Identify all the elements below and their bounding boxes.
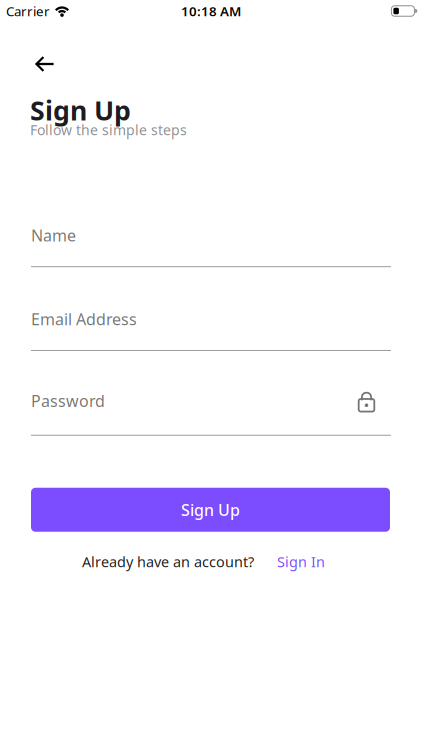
button[interactable] bbox=[0, 22, 55, 72]
staticText: Sign Up bbox=[181, 499, 240, 521]
staticText: Email Address bbox=[31, 308, 137, 330]
staticText: Follow the simple steps bbox=[30, 120, 187, 139]
button[interactable]: Sign In bbox=[277, 552, 325, 571]
staticText: Name bbox=[31, 224, 76, 246]
staticText: 10:18 AM bbox=[181, 2, 241, 20]
staticText: Sign In bbox=[277, 552, 325, 571]
button[interactable]: Sign Up bbox=[31, 488, 390, 532]
staticText: Carrier bbox=[6, 2, 50, 20]
staticText: Already have an account? bbox=[82, 552, 254, 571]
staticText: Sign Up bbox=[30, 92, 131, 128]
staticText: Password bbox=[31, 390, 105, 412]
